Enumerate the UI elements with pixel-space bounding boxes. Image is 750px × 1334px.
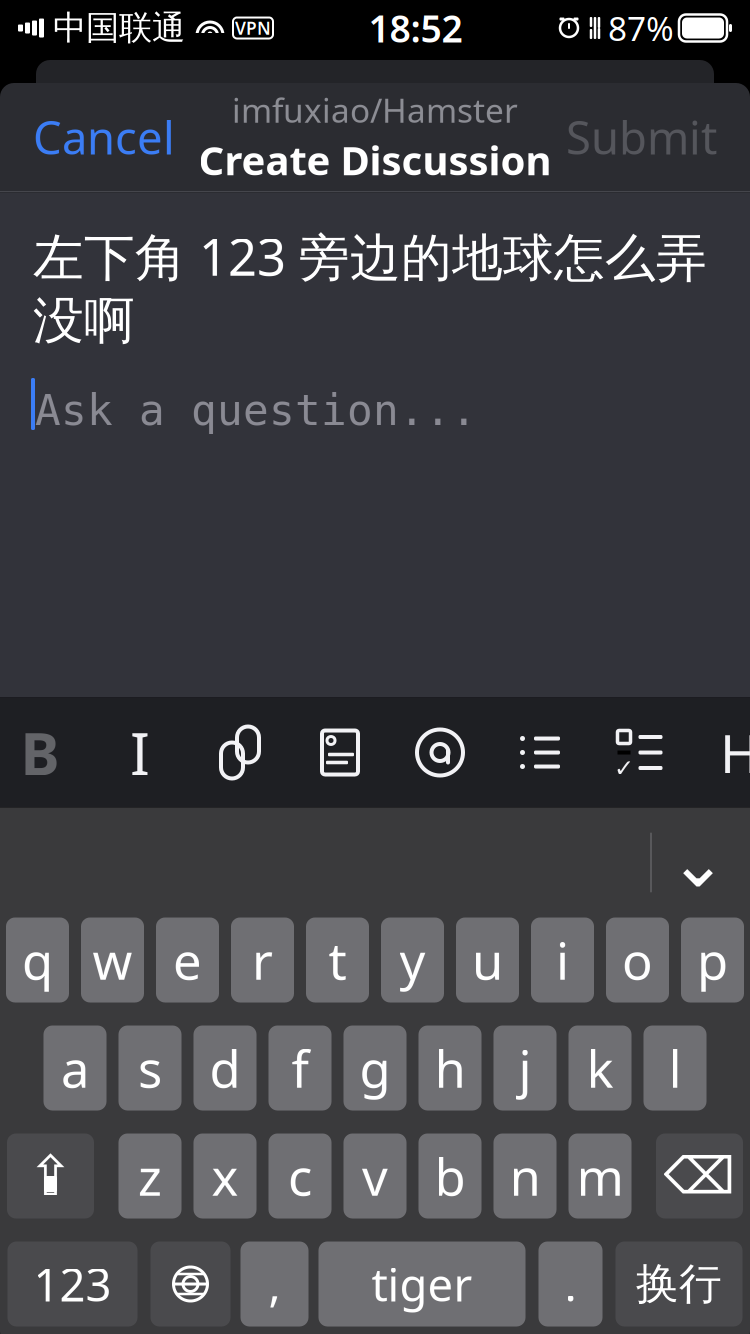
button[interactable]: Italic — [100, 697, 180, 807]
button[interactable]: Mention — [400, 697, 480, 807]
button[interactable]: Shift — [7, 1133, 94, 1218]
button[interactable]: o — [606, 917, 669, 1002]
button[interactable]: y — [381, 917, 444, 1002]
staticText: H — [720, 717, 750, 788]
staticText: , — [268, 1254, 280, 1314]
staticText: j — [518, 1034, 531, 1102]
button[interactable]: d — [193, 1025, 256, 1110]
button[interactable]: Bulleted list — [500, 697, 580, 807]
button[interactable]: Next keyboard — [150, 1241, 230, 1326]
button[interactable]: p — [681, 917, 744, 1002]
button[interactable]: i — [531, 917, 594, 1002]
staticText: h — [434, 1034, 465, 1102]
staticText: i — [556, 926, 569, 994]
button[interactable]: a — [43, 1025, 106, 1110]
button[interactable]: g — [343, 1025, 406, 1110]
staticText: c — [288, 1142, 312, 1210]
staticText: Submit — [566, 107, 717, 167]
button[interactable]: l — [643, 1025, 706, 1110]
staticText: u — [472, 926, 503, 994]
button[interactable]: j — [493, 1025, 556, 1110]
staticText: . — [564, 1254, 576, 1314]
staticText: r — [252, 926, 273, 994]
staticText: imfuxiao/Hamster — [232, 88, 518, 132]
staticText: s — [138, 1034, 162, 1102]
button[interactable]: f — [268, 1025, 331, 1110]
staticText: o — [622, 926, 653, 994]
button[interactable]: q — [6, 917, 69, 1002]
staticText: tiger — [371, 1254, 472, 1314]
staticText: x — [211, 1142, 238, 1210]
button[interactable]: z — [118, 1133, 181, 1218]
button[interactable]: u — [456, 917, 519, 1002]
staticText: q — [22, 926, 53, 994]
staticText: g — [359, 1034, 390, 1102]
staticText: Create Discussion — [198, 133, 551, 186]
staticText: 123 — [33, 1254, 111, 1314]
button[interactable]: 换行 — [615, 1241, 742, 1326]
staticText: z — [138, 1142, 162, 1210]
staticText: 换行 — [636, 1258, 722, 1310]
button[interactable]: Heading — [700, 697, 750, 807]
staticText: l — [668, 1034, 681, 1102]
button[interactable]: r — [231, 917, 294, 1002]
button[interactable]: tiger — [318, 1241, 525, 1326]
button[interactable]: h — [418, 1025, 481, 1110]
staticText: ⌄ — [669, 823, 727, 902]
staticText: d — [209, 1034, 240, 1102]
button[interactable]: t — [306, 917, 369, 1002]
staticText: 中国联通 — [53, 7, 185, 48]
staticText: p — [697, 926, 728, 994]
button[interactable]: c — [268, 1133, 331, 1218]
button[interactable]: Submit — [552, 89, 731, 185]
staticText: ⌫ — [663, 1147, 735, 1205]
button[interactable]: n — [493, 1133, 556, 1218]
staticText: VPN — [235, 16, 271, 39]
button[interactable]: m — [568, 1133, 631, 1218]
staticText: e — [173, 926, 202, 994]
staticText: t — [328, 926, 346, 994]
button[interactable]: Cancel — [19, 89, 189, 185]
staticText: k — [586, 1034, 613, 1102]
button[interactable]: k — [568, 1025, 631, 1110]
staticText: Cancel — [33, 107, 175, 167]
staticText: m — [576, 1142, 623, 1210]
staticText: B — [20, 713, 59, 791]
staticText: v — [362, 1142, 388, 1210]
button[interactable]: Hide keyboard — [656, 807, 740, 917]
button[interactable]: Task list — [600, 697, 680, 807]
staticText: 左下角 123 旁边的地球怎么弄没啊 — [33, 222, 707, 352]
button[interactable]: v — [343, 1133, 406, 1218]
button[interactable]: b — [418, 1133, 481, 1218]
staticText: w — [92, 926, 132, 994]
button[interactable]: x — [193, 1133, 256, 1218]
staticText: y — [399, 926, 425, 994]
staticText: Ask a question... — [35, 386, 477, 434]
staticText: n — [509, 1142, 540, 1210]
button[interactable]: 123 — [7, 1241, 137, 1326]
staticText: 87% — [608, 6, 674, 50]
button[interactable]: Delete — [656, 1133, 743, 1218]
staticText: b — [434, 1142, 465, 1210]
button[interactable]: . — [538, 1241, 602, 1326]
button[interactable]: w — [81, 917, 144, 1002]
staticText: f — [291, 1034, 308, 1102]
staticText: 18:52 — [368, 3, 462, 53]
staticText: I — [130, 713, 150, 791]
staticText: a — [61, 1034, 89, 1102]
button[interactable]: Bold — [0, 697, 80, 807]
staticText: ⇧ — [27, 1144, 74, 1208]
button[interactable]: e — [156, 917, 219, 1002]
button[interactable]: Insert link — [200, 697, 280, 807]
button[interactable]: Insert image — [300, 697, 380, 807]
staticText: ✓ — [614, 754, 634, 782]
button[interactable]: s — [118, 1025, 181, 1110]
button[interactable]: , — [240, 1241, 308, 1326]
